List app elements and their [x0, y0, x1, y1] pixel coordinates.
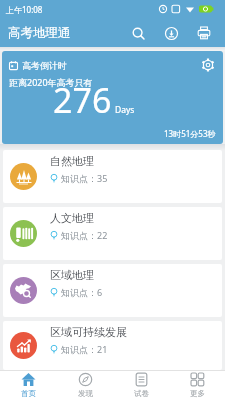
button[interactable]: 高考倒计时	[2, 51, 223, 144]
staticText: 更多	[190, 389, 205, 398]
staticText: Days	[115, 104, 135, 116]
staticText: 区域地理	[50, 268, 94, 282]
button[interactable]: 区域地理	[3, 264, 222, 317]
staticText: 13时51分53秒	[164, 128, 216, 139]
button[interactable]: 首页	[0, 371, 57, 400]
staticText: 高考地理通	[8, 25, 71, 41]
staticText: 人文地理	[50, 211, 94, 225]
button[interactable]: 区域可持续发展	[3, 321, 222, 370]
staticText: 知识点：35	[61, 172, 108, 184]
staticText: 距离2020年高考只有	[9, 76, 93, 88]
button[interactable]: 自然地理	[3, 150, 222, 203]
button[interactable]	[125, 20, 151, 46]
button[interactable]: 人文地理	[3, 207, 222, 260]
staticText: 上午10:08	[6, 4, 43, 15]
button[interactable]	[158, 20, 184, 46]
button[interactable]: 试卷	[113, 371, 169, 400]
staticText: 试卷	[134, 389, 149, 398]
staticText: 首页	[21, 389, 36, 398]
button[interactable]	[191, 20, 217, 46]
staticText: 知识点：21	[61, 343, 108, 355]
button[interactable]: 发现	[57, 371, 113, 400]
button[interactable]: 更多	[169, 371, 225, 400]
staticText: 自然地理	[50, 154, 94, 168]
staticText: 高考倒计时	[22, 60, 67, 71]
staticText: 区域可持续发展	[50, 325, 127, 339]
staticText: 知识点：22	[61, 229, 108, 241]
staticText: 发现	[78, 389, 93, 398]
staticText: 知识点：6	[61, 286, 103, 298]
staticText: 276	[53, 77, 112, 123]
